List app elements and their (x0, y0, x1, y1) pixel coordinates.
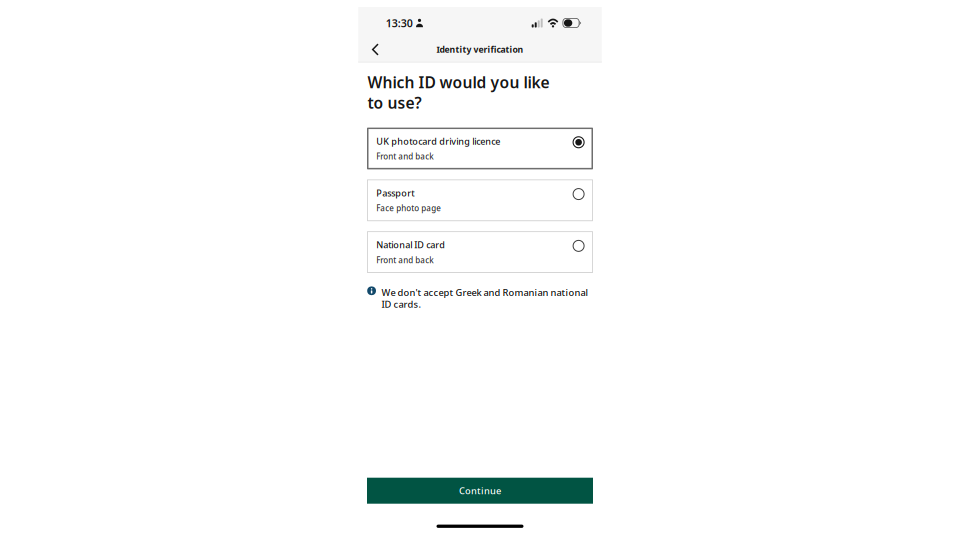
staticText: 13:30 (386, 16, 413, 30)
staticText: Continue (459, 484, 501, 497)
staticText: Which ID would you like (367, 71, 549, 93)
button[interactable]: National ID card (367, 231, 593, 273)
staticText: National ID card (376, 239, 445, 251)
button[interactable]: UK photocard driving licence (367, 128, 593, 169)
staticText: We don't accept Greek and Romanian natio… (381, 286, 588, 299)
staticText: ID cards. (381, 298, 421, 310)
staticText: Front and back (376, 255, 433, 265)
staticText: to use? (367, 92, 421, 113)
button[interactable]: Back (363, 37, 387, 61)
staticText: Face photo page (376, 203, 441, 214)
staticText: Passport (376, 187, 414, 199)
staticText: Identity verification (436, 44, 523, 55)
button[interactable]: Passport (367, 179, 593, 221)
staticText: UK photocard driving licence (376, 135, 500, 147)
button[interactable]: Continue (367, 478, 593, 504)
staticText: Front and back (376, 151, 433, 162)
